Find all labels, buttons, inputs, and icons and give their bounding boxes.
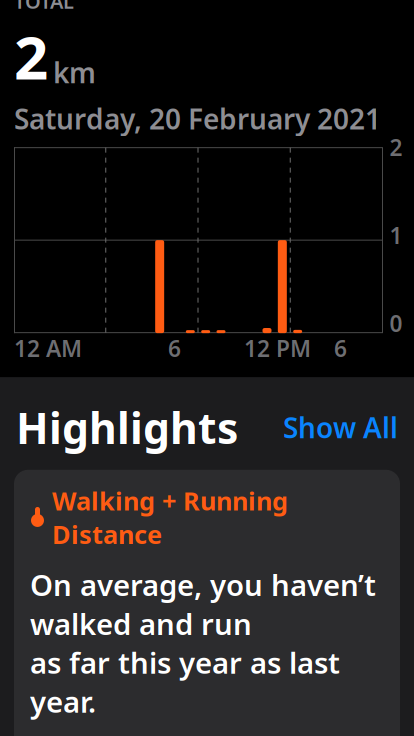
- staticText: 2: [389, 132, 402, 162]
- staticText: 0: [389, 308, 402, 338]
- staticText: TOTAL: [14, 0, 74, 14]
- staticText: Highlights: [16, 399, 238, 456]
- staticText: 12 AM: [14, 333, 82, 363]
- staticText: 12 PM: [244, 333, 311, 363]
- button[interactable]: Walking + Running Distance: [14, 470, 400, 736]
- staticText: Show All: [283, 409, 398, 446]
- staticText: 6: [334, 333, 347, 363]
- staticText: On average, you haven’t walked and run a…: [30, 565, 376, 721]
- staticText: 2: [14, 16, 48, 96]
- button[interactable]: Show All: [273, 403, 398, 452]
- staticText: Saturday, 20 February 2021: [14, 100, 381, 137]
- staticText: Walking + Running Distance: [52, 484, 288, 551]
- staticText: 1: [389, 220, 402, 250]
- staticText: km: [53, 54, 96, 91]
- staticText: 6: [168, 333, 181, 363]
